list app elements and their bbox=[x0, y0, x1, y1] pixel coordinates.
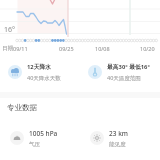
staticText: 最高30° 最低16° bbox=[107, 63, 150, 71]
staticText: 09/11 bbox=[13, 45, 28, 52]
button[interactable]: Temperature range bbox=[80, 59, 160, 85]
other: Visibility bbox=[93, 134, 101, 142]
staticText: 能见度 bbox=[109, 141, 126, 148]
staticText: 日期 bbox=[2, 45, 13, 52]
staticText: 40天温度范围 bbox=[107, 74, 141, 82]
other: Precipitation bbox=[10, 67, 20, 77]
button[interactable]: Visibility bbox=[80, 125, 160, 151]
staticText: 10/08 bbox=[95, 45, 110, 52]
staticText: 16° bbox=[4, 25, 16, 35]
staticText: 气压 bbox=[29, 141, 40, 148]
button[interactable]: Precipitation bbox=[0, 59, 80, 85]
staticText: 40天降水天数 bbox=[27, 74, 61, 82]
other: Temperature range bbox=[90, 67, 100, 77]
other: Air pressure bbox=[13, 134, 21, 142]
staticText: 1005 hPa bbox=[29, 129, 58, 138]
staticText: 23 km bbox=[109, 129, 128, 138]
staticText: 专业数据 bbox=[7, 103, 37, 112]
staticText: 10/20 bbox=[140, 45, 155, 52]
staticText: 12天降水 bbox=[27, 63, 52, 71]
button[interactable]: Air pressure bbox=[0, 125, 80, 151]
staticText: 09/25 bbox=[59, 45, 74, 52]
